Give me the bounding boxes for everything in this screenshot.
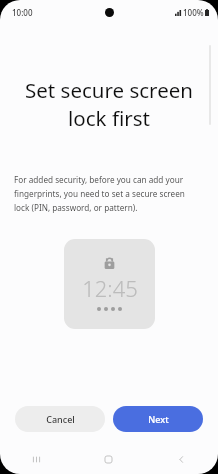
staticText: For added security, before you can add y… <box>14 174 196 213</box>
staticText: Set secure screen lock first <box>12 76 206 132</box>
button[interactable]: Cancel <box>15 406 105 432</box>
staticText: Next <box>148 413 169 425</box>
button[interactable]: Back <box>145 444 218 474</box>
button[interactable]: Next <box>113 406 203 432</box>
button[interactable]: Home <box>72 444 145 474</box>
staticText: Cancel <box>46 413 75 425</box>
staticText: 100% <box>183 7 204 18</box>
button[interactable]: Recents <box>0 444 72 474</box>
staticText: 10:00 <box>12 7 33 18</box>
staticText: 12:45 <box>82 273 138 303</box>
